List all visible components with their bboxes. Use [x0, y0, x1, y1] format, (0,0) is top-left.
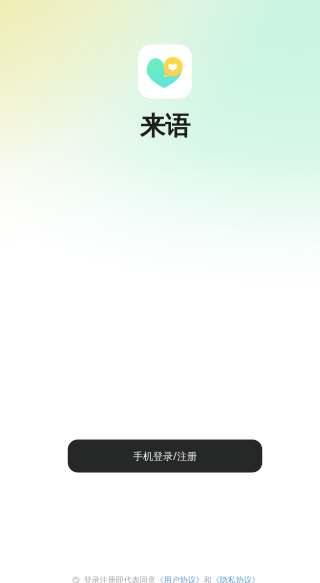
- staticText: 来语: [140, 110, 190, 142]
- button[interactable]: Agree to terms: [72, 576, 84, 583]
- button[interactable]: 《用户协议》: [156, 575, 204, 583]
- staticText: 和: [204, 575, 212, 583]
- button[interactable]: 《隐私协议》: [212, 575, 260, 583]
- staticText: 《隐私协议》: [212, 575, 260, 583]
- staticText: 手机登录/注册: [133, 449, 197, 463]
- staticText: 《用户协议》: [156, 575, 204, 583]
- staticText: 登录注册即代表同意: [84, 575, 156, 583]
- button[interactable]: 手机登录/注册: [68, 439, 262, 472]
